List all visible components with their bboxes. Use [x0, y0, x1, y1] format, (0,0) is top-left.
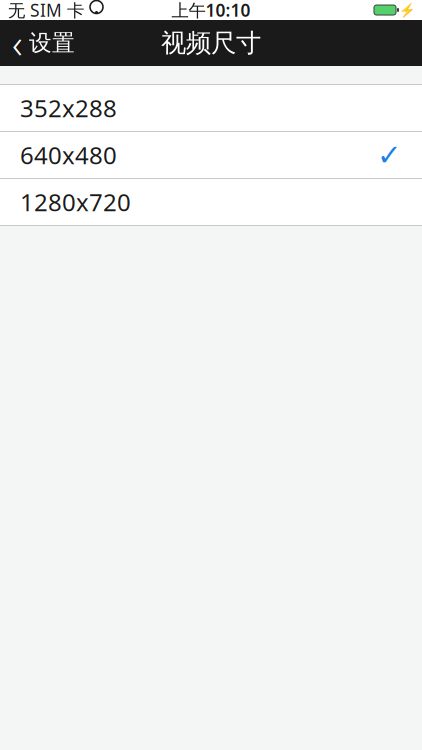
staticText: ✓: [377, 138, 402, 172]
button[interactable]: 1280x720: [0, 179, 422, 225]
staticText: 无 SIM 卡: [8, 0, 84, 21]
button[interactable]: 640x480: [0, 132, 422, 178]
staticText: ⚡: [399, 2, 416, 18]
button[interactable]: 352x288: [0, 85, 422, 131]
staticText: 视频尺寸: [161, 27, 261, 58]
staticText: 352x288: [20, 92, 117, 124]
staticText: 1280x720: [20, 186, 131, 218]
staticText: ‹: [12, 16, 23, 69]
staticText: 上午10:10: [171, 0, 250, 21]
button[interactable]: 设置: [0, 20, 85, 66]
staticText: [84, 0, 89, 21]
staticText: 640x480: [20, 139, 117, 171]
staticText: 设置: [29, 29, 75, 57]
